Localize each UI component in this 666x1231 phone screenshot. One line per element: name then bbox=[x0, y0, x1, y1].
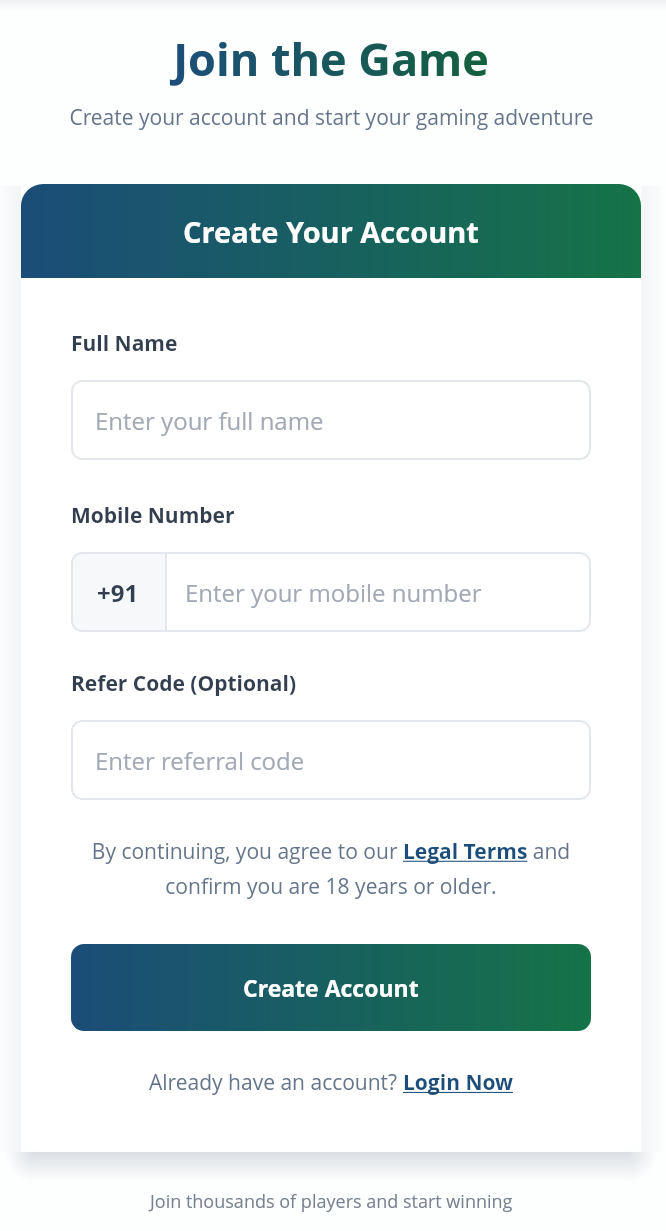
staticText: Already have an account? bbox=[149, 1068, 403, 1097]
staticText: Enter your mobile number bbox=[185, 576, 482, 609]
staticText: Create Your Account bbox=[183, 212, 479, 251]
staticText: +91 bbox=[97, 576, 139, 609]
staticText: Join the Game bbox=[173, 28, 489, 89]
staticText: Login Now bbox=[403, 1068, 514, 1097]
staticText: Create Account bbox=[243, 972, 419, 1003]
button[interactable]: Login Now bbox=[403, 1068, 514, 1097]
button[interactable]: +91 bbox=[71, 552, 591, 632]
button[interactable]: Enter referral code bbox=[71, 720, 591, 800]
staticText: By continuing, you agree to our Legal Te… bbox=[71, 837, 591, 900]
staticText: Enter your full name bbox=[95, 404, 324, 437]
staticText: Full Name bbox=[71, 329, 178, 358]
staticText: Mobile Number bbox=[71, 501, 235, 530]
staticText: Refer Code (Optional) bbox=[71, 669, 296, 698]
button[interactable]: Enter your full name bbox=[71, 380, 591, 460]
staticText: Join thousands of players and start winn… bbox=[150, 1189, 513, 1214]
staticText: Create your account and start your gamin… bbox=[69, 103, 594, 132]
staticText: Enter referral code bbox=[95, 744, 305, 777]
button[interactable]: Create Account bbox=[71, 944, 591, 1031]
